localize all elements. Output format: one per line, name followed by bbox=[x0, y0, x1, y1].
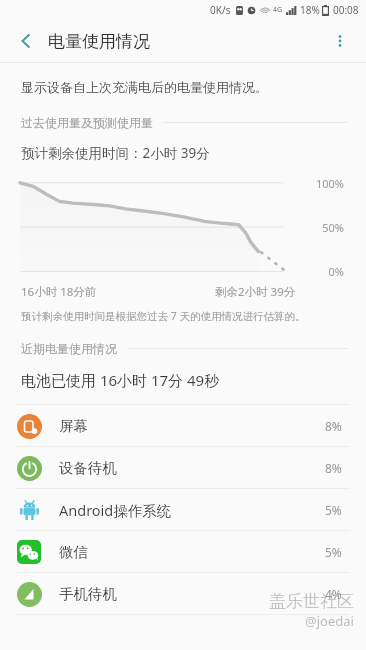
button[interactable]: Back bbox=[8, 23, 44, 59]
staticText: 8% bbox=[325, 460, 342, 476]
button[interactable]: Android操作系统 bbox=[0, 489, 366, 530]
button[interactable]: 微信 bbox=[0, 531, 366, 572]
staticText: 5% bbox=[325, 502, 342, 518]
staticText: 0K/s bbox=[210, 3, 231, 17]
staticText: @joedai bbox=[305, 612, 354, 630]
button[interactable]: More options bbox=[322, 23, 358, 59]
staticText: 近期电量使用情况 bbox=[21, 341, 117, 356]
staticText: 4% bbox=[325, 586, 342, 602]
button[interactable]: 屏幕 bbox=[0, 405, 366, 446]
staticText: 8% bbox=[325, 418, 342, 434]
staticText: 预计剩余使用时间：2小时 39分 bbox=[21, 144, 210, 162]
staticText: 微信 bbox=[59, 543, 88, 561]
staticText: 0% bbox=[328, 264, 344, 279]
staticText: 盖乐世社区 bbox=[269, 591, 354, 612]
staticText: 过去使用量及预测使用量 bbox=[21, 115, 153, 130]
staticText: 设备待机 bbox=[59, 459, 117, 477]
staticText: 屏幕 bbox=[59, 417, 88, 435]
staticText: 手机待机 bbox=[59, 585, 117, 603]
staticText: 电池已使用 16小时 17分 49秒 bbox=[21, 370, 220, 390]
staticText: 显示设备自上次充满电后的电量使用情况。 bbox=[21, 79, 268, 95]
staticText: Android操作系统 bbox=[59, 500, 172, 520]
staticText: 16小时 18分前 bbox=[21, 284, 97, 300]
button[interactable]: 设备待机 bbox=[0, 447, 366, 488]
staticText: 100% bbox=[315, 176, 344, 191]
button[interactable]: 手机待机 bbox=[0, 573, 366, 614]
staticText: 00:08 bbox=[333, 3, 359, 17]
staticText: 剩余2小时 39分 bbox=[215, 284, 296, 300]
staticText: 18% bbox=[300, 3, 320, 17]
staticText: 5% bbox=[325, 544, 342, 560]
staticText: 50% bbox=[322, 220, 344, 235]
staticText: 预计剩余使用时间是根据您过去 7 天的使用情况进行估算的。 bbox=[21, 309, 306, 323]
staticText: 4G bbox=[273, 5, 283, 15]
staticText: 电量使用情况 bbox=[48, 31, 150, 52]
